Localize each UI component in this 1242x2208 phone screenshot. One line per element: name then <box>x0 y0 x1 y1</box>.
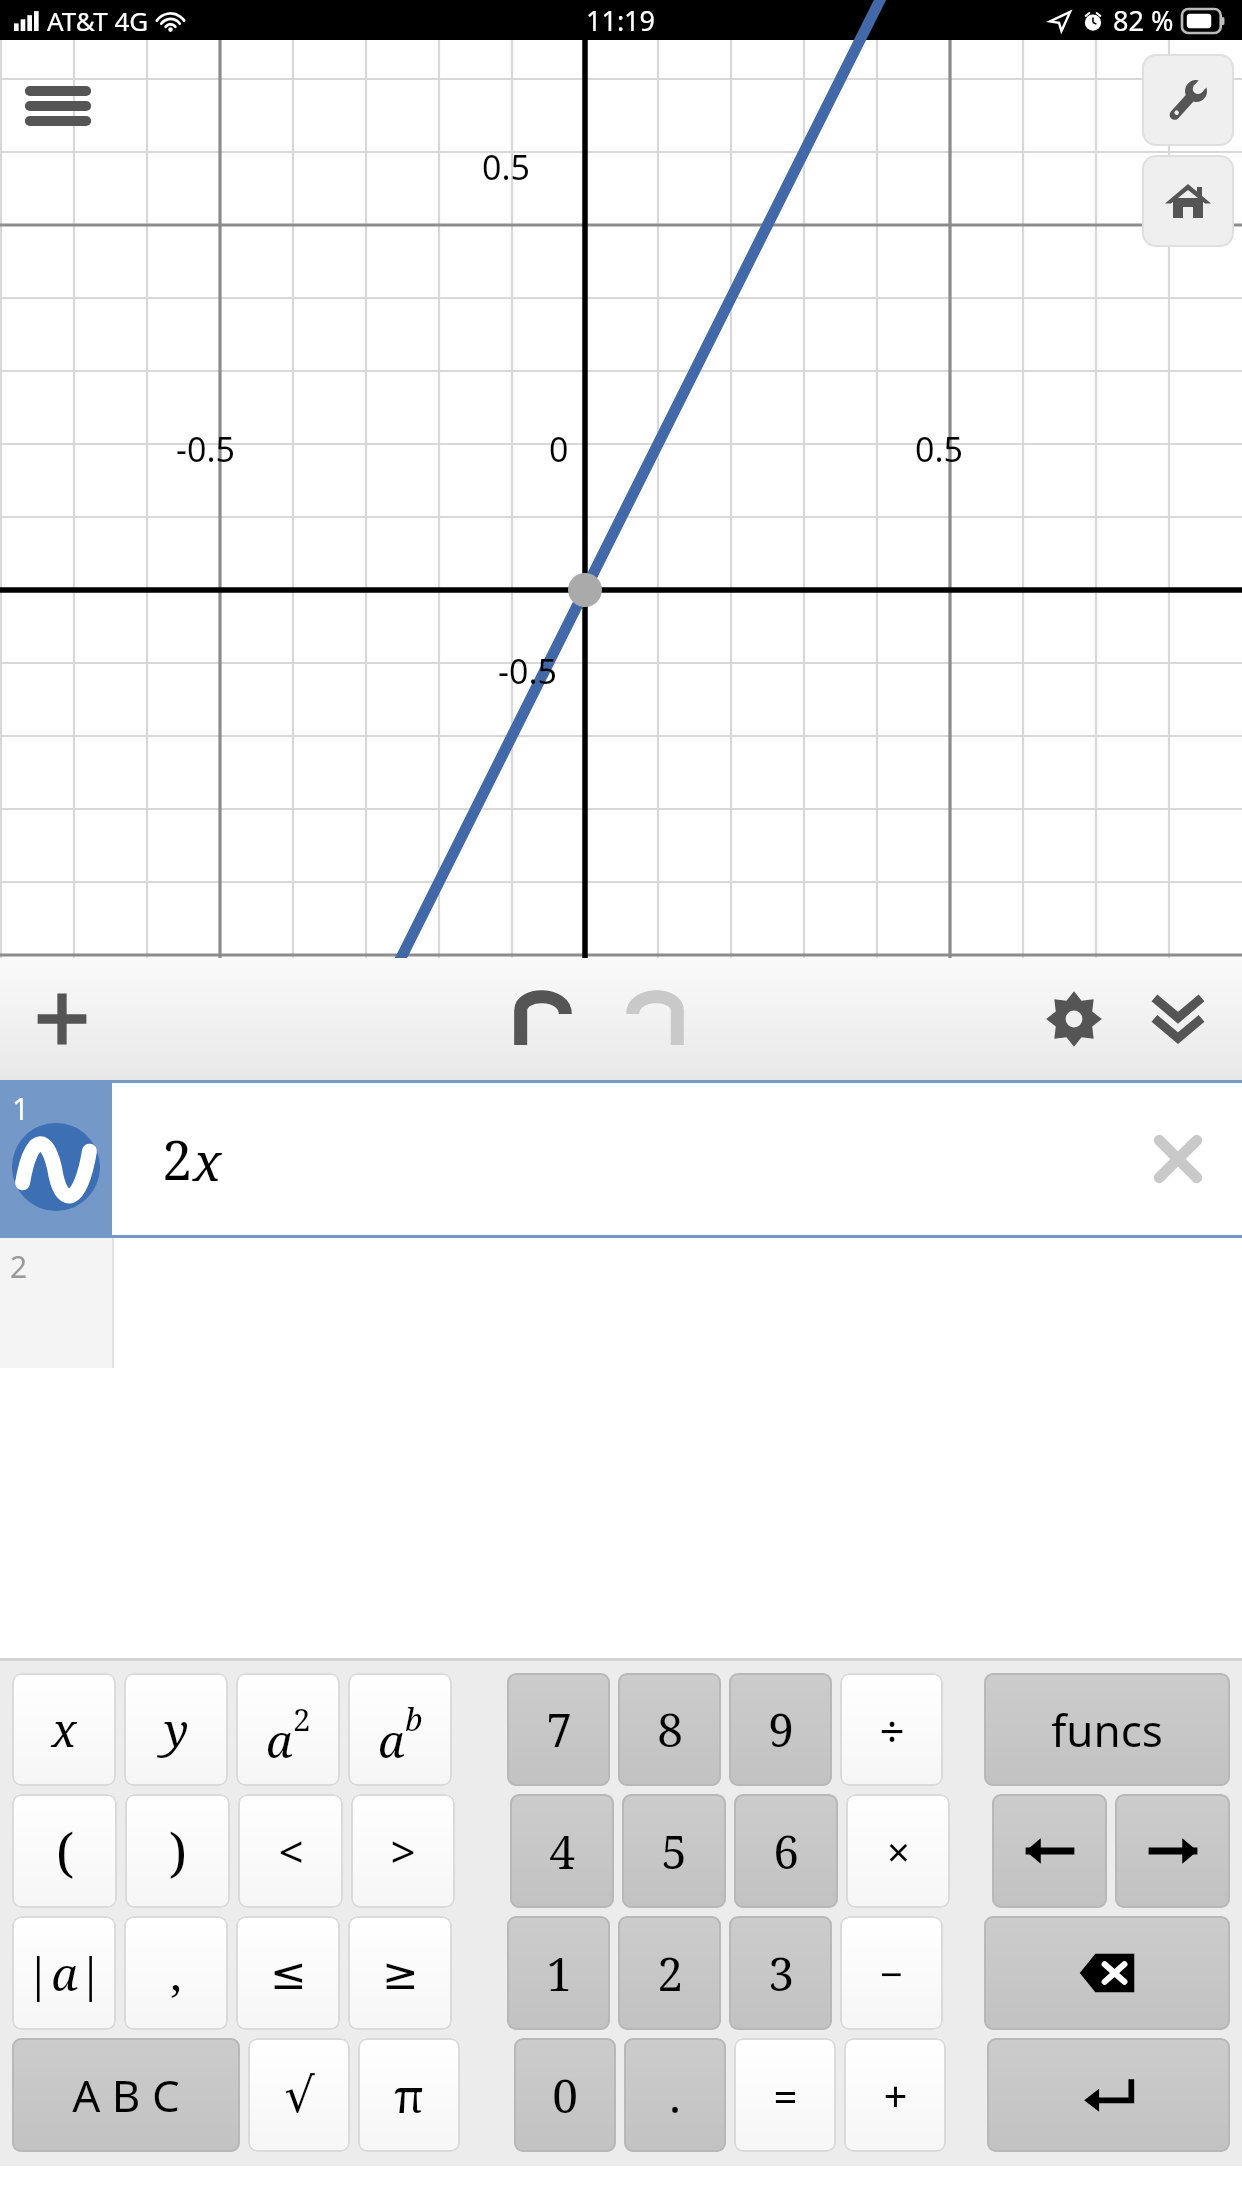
staticText: 7 <box>546 1698 572 1761</box>
button[interactable]: 1 <box>0 1080 1242 1238</box>
button[interactable]: 5 <box>622 1794 726 1908</box>
button[interactable]: Move cursor left <box>992 1794 1107 1908</box>
staticText: 0 <box>549 426 569 472</box>
staticText: -0.5 <box>498 648 557 694</box>
button[interactable]: y <box>124 1673 228 1786</box>
button[interactable]: A B C <box>12 2038 240 2152</box>
staticText: AT&T 4G <box>47 3 149 38</box>
staticText: . <box>669 2064 681 2127</box>
staticText: b <box>405 1698 423 1741</box>
staticText: 0.5 <box>482 144 531 190</box>
button[interactable]: Delete expression <box>1142 1123 1214 1195</box>
button[interactable]: Collapse <box>1130 971 1226 1067</box>
staticText: funcs <box>1051 1700 1163 1760</box>
staticText: = <box>773 2067 798 2124</box>
button[interactable]: Move cursor right <box>1115 1794 1230 1908</box>
button[interactable]: 2 <box>618 1916 721 2030</box>
button[interactable]: . <box>624 2038 726 2152</box>
button[interactable]: , <box>124 1916 228 2030</box>
button[interactable]: < <box>238 1794 343 1908</box>
staticText: 0.5 <box>915 426 964 472</box>
button[interactable]: Enter <box>987 2038 1230 2152</box>
button[interactable]: a <box>348 1673 452 1786</box>
staticText: , <box>170 1942 182 2005</box>
staticText: |a| <box>25 1942 104 2005</box>
staticText: x <box>51 1698 77 1761</box>
button[interactable]: 1 <box>507 1916 610 2030</box>
button[interactable]: 0 <box>514 2038 616 2152</box>
staticText: 9 <box>768 1698 794 1761</box>
button[interactable]: Undo <box>495 971 591 1067</box>
button[interactable]: Redo <box>607 971 703 1067</box>
button[interactable]: = <box>734 2038 836 2152</box>
staticText: ≥ <box>382 1948 419 1999</box>
button[interactable]: × <box>846 1794 950 1908</box>
staticText: 1 <box>546 1942 572 2005</box>
staticText: 0 <box>552 2064 578 2127</box>
button[interactable]: a <box>236 1673 340 1786</box>
button[interactable]: − <box>840 1916 943 2030</box>
staticText: − <box>880 1946 903 2000</box>
button[interactable]: Add expression <box>14 971 110 1067</box>
staticText: ÷ <box>879 1700 905 1760</box>
staticText: > <box>390 1821 416 1881</box>
staticText: + <box>883 2067 908 2124</box>
staticText: a <box>266 1709 293 1772</box>
staticText: 2 <box>10 1246 28 1287</box>
button[interactable]: ≥ <box>348 1916 452 2030</box>
staticText: 2 <box>162 1122 193 1196</box>
button[interactable]: 8 <box>618 1673 721 1786</box>
staticText: ≤ <box>270 1948 307 1999</box>
staticText: y <box>164 1698 189 1761</box>
staticText: x <box>193 1125 222 1196</box>
staticText: 4 <box>549 1820 575 1883</box>
button[interactable]: π <box>358 2038 460 2152</box>
staticText: a <box>378 1709 405 1772</box>
staticText: 82 % <box>1113 2 1174 39</box>
button[interactable]: ( <box>12 1794 117 1908</box>
staticText: A B C <box>72 2065 180 2125</box>
staticText: 2 <box>657 1942 683 2005</box>
staticText: 8 <box>657 1698 683 1761</box>
staticText: ( <box>56 1816 74 1887</box>
button[interactable]: funcs <box>984 1673 1230 1786</box>
button[interactable]: 7 <box>507 1673 610 1786</box>
button[interactable]: 4 <box>510 1794 614 1908</box>
button[interactable]: + <box>844 2038 946 2152</box>
button[interactable]: x <box>12 1673 116 1786</box>
staticText: 5 <box>661 1820 687 1883</box>
staticText: × <box>887 1824 910 1878</box>
button[interactable]: Settings <box>1026 971 1122 1067</box>
staticText: π <box>394 2064 424 2127</box>
button[interactable]: 6 <box>734 1794 838 1908</box>
button[interactable]: Menu <box>20 76 96 136</box>
staticText: 1 <box>12 1088 30 1129</box>
staticText: 6 <box>773 1820 799 1883</box>
button[interactable]: ) <box>125 1794 230 1908</box>
button[interactable]: 3 <box>729 1916 832 2030</box>
button[interactable]: √ <box>248 2038 350 2152</box>
staticText: < <box>278 1821 304 1881</box>
button[interactable]: > <box>351 1794 455 1908</box>
staticText: √ <box>284 2067 315 2123</box>
staticText: 2 <box>293 1698 311 1741</box>
button[interactable]: ÷ <box>840 1673 943 1786</box>
staticText: ) <box>169 1816 187 1887</box>
button[interactable]: 2 <box>0 1238 1242 1368</box>
staticText: 11:19 <box>586 2 656 39</box>
staticText: 3 <box>768 1942 794 2005</box>
button[interactable]: 9 <box>729 1673 832 1786</box>
button[interactable]: Home <box>1142 155 1234 247</box>
button[interactable]: Backspace <box>984 1916 1230 2030</box>
button[interactable]: ≤ <box>236 1916 340 2030</box>
staticText: -0.5 <box>176 426 235 472</box>
button[interactable]: Settings <box>1142 54 1234 146</box>
button[interactable]: |a| <box>12 1916 116 2030</box>
